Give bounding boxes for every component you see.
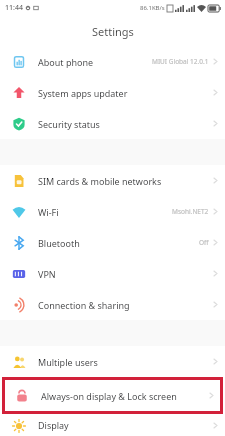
button[interactable]: System apps updater (0, 77, 225, 108)
button[interactable]: SIM cards and mobile networks (0, 165, 225, 196)
other: Connection and sharing (12, 298, 26, 312)
other: System apps updater (12, 86, 26, 100)
staticText: VPN (38, 268, 56, 280)
staticText: Display (38, 419, 69, 431)
staticText: 11:44 (5, 3, 23, 13)
staticText: Off (199, 238, 209, 247)
other: Security status (12, 117, 26, 131)
button[interactable]: Multiple users (0, 346, 225, 377)
button[interactable]: Wi-Fi (0, 196, 225, 227)
staticText: System apps updater (38, 87, 128, 99)
staticText: About phone (38, 56, 94, 68)
staticText: 86.1KB/s (140, 4, 165, 12)
button[interactable]: Display (0, 414, 225, 436)
staticText: MIUI Global 12.0.1 (152, 57, 209, 66)
other: SIM cards and mobile networks (12, 174, 26, 188)
staticText: SIM cards & mobile networks (38, 175, 162, 187)
button[interactable]: Connection and sharing (0, 289, 225, 320)
button[interactable]: VPN (0, 258, 225, 289)
other: About phone (12, 55, 26, 69)
button[interactable]: Bluetooth (0, 227, 225, 258)
button[interactable]: About phone (0, 46, 225, 77)
staticText: Bluetooth (38, 237, 80, 249)
button[interactable]: Security status (0, 108, 225, 139)
other: Multiple users (12, 355, 26, 369)
staticText: Connection & sharing (38, 299, 130, 311)
other: Wi-Fi (12, 205, 26, 219)
staticText: Multiple users (38, 356, 98, 368)
staticText: Always-on display & Lock screen (41, 390, 177, 402)
button[interactable]: Always-on display and Lock screen (5, 380, 220, 411)
staticText: Security status (38, 118, 100, 130)
other: Always-on display and Lock screen (15, 389, 29, 403)
staticText: Wi-Fi (38, 206, 59, 218)
other: Bluetooth (12, 236, 26, 250)
other: VPN (12, 267, 26, 281)
staticText: Msohi.NET2 (172, 207, 209, 216)
staticText: Settings (92, 24, 134, 39)
other: Display (12, 419, 26, 433)
